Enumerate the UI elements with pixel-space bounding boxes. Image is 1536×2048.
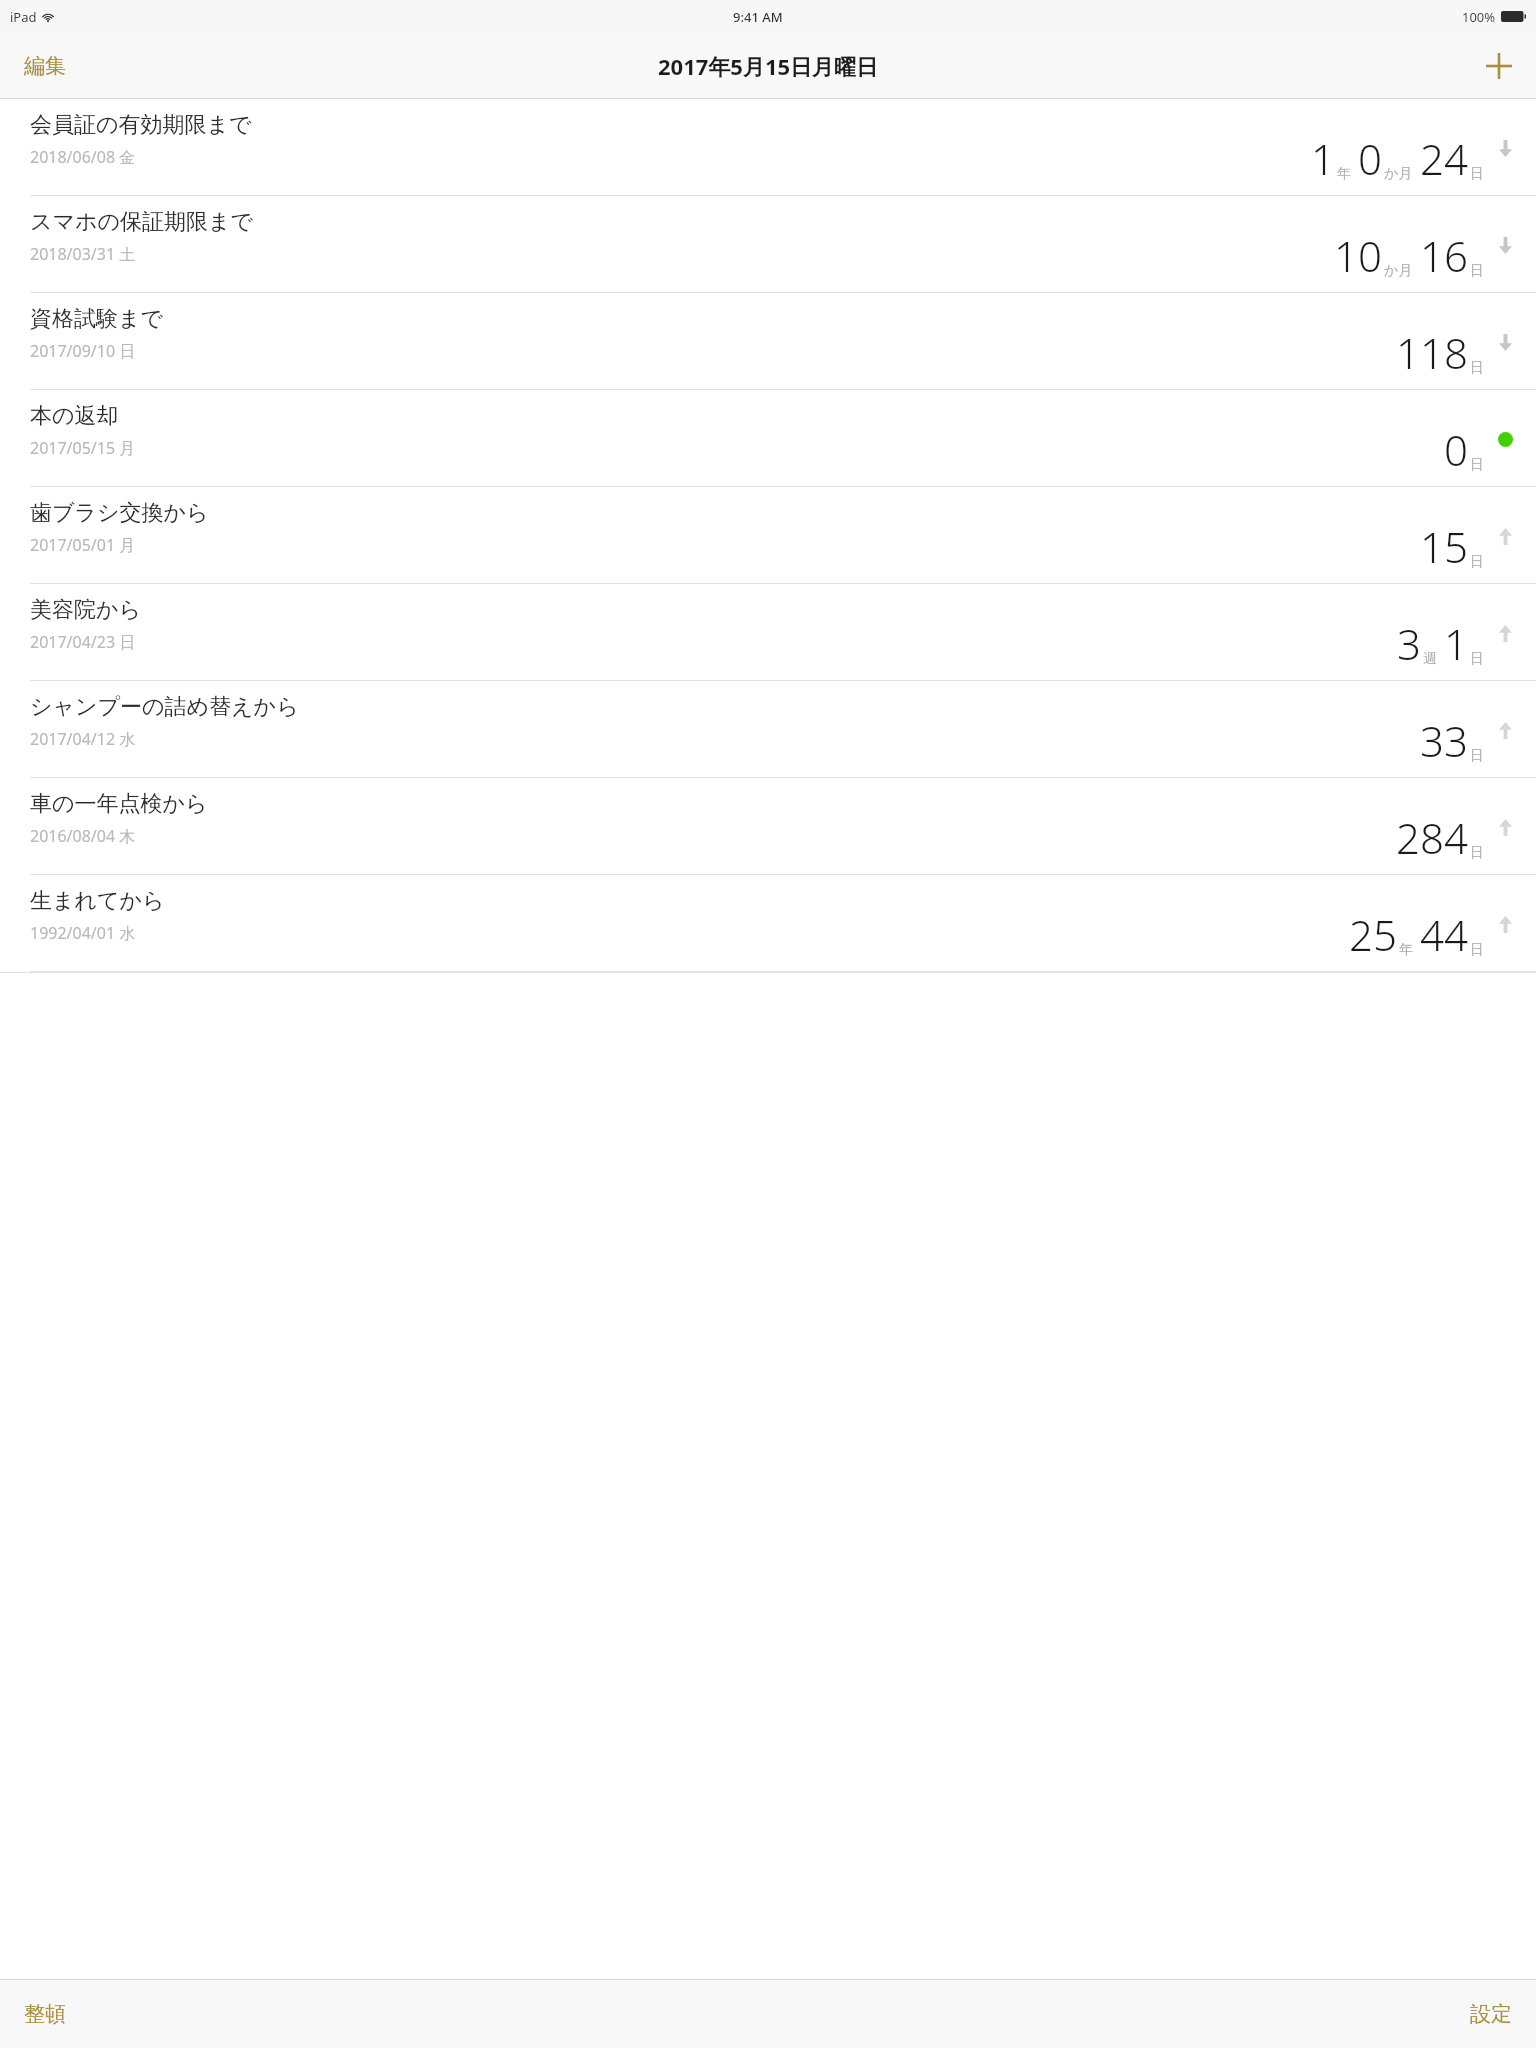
staticText: 日: [1470, 941, 1484, 959]
button[interactable]: 生まれてから: [0, 875, 1536, 972]
staticText: 25: [1349, 906, 1397, 963]
staticText: 0: [1358, 130, 1382, 187]
staticText: 設定: [1470, 2001, 1512, 2027]
staticText: か月: [1384, 165, 1413, 183]
staticText: 編集: [24, 53, 66, 79]
staticText: 284: [1396, 809, 1468, 866]
staticText: 日: [1470, 359, 1484, 377]
staticText: 2018/06/08 金: [30, 146, 136, 168]
button[interactable]: 車の一年点検から: [0, 778, 1536, 875]
staticText: 16: [1420, 227, 1468, 284]
staticText: スマホの保証期限まで: [30, 208, 254, 236]
staticText: 美容院から: [30, 596, 142, 624]
staticText: 日: [1470, 553, 1484, 571]
button[interactable]: シャンプーの詰め替えから: [0, 681, 1536, 778]
staticText: 会員証の有効期限まで: [30, 111, 252, 139]
staticText: 日: [1470, 650, 1484, 668]
staticText: 10: [1334, 227, 1382, 284]
staticText: 1: [1311, 130, 1335, 187]
staticText: 整頓: [24, 2001, 66, 2027]
staticText: 本の返却: [30, 402, 119, 430]
staticText: 2016/08/04 木: [30, 825, 136, 847]
button[interactable]: 美容院から: [0, 584, 1536, 681]
button[interactable]: 設定: [1458, 1993, 1524, 2035]
button[interactable]: Add: [1476, 43, 1522, 89]
button[interactable]: 整頓: [12, 1993, 78, 2035]
staticText: 2017/04/12 水: [30, 728, 136, 750]
staticText: 資格試験まで: [30, 305, 164, 333]
staticText: 日: [1470, 747, 1484, 765]
staticText: か月: [1384, 262, 1413, 280]
staticText: iPad: [10, 8, 37, 26]
staticText: 年: [1337, 165, 1351, 183]
staticText: 44: [1420, 906, 1468, 963]
staticText: 週: [1423, 650, 1437, 668]
staticText: 1992/04/01 水: [30, 922, 136, 944]
staticText: 100%: [1462, 8, 1496, 26]
staticText: 2018/03/31 土: [30, 243, 136, 265]
staticText: シャンプーの詰め替えから: [30, 693, 299, 721]
staticText: 生まれてから: [30, 887, 165, 915]
staticText: 3: [1397, 615, 1421, 672]
staticText: 118: [1396, 324, 1468, 381]
staticText: 2017/05/15 月: [30, 437, 136, 459]
staticText: 日: [1470, 456, 1484, 474]
staticText: 年: [1399, 941, 1413, 959]
staticText: 日: [1470, 262, 1484, 280]
button[interactable]: スマホの保証期限まで: [0, 196, 1536, 293]
staticText: 2017/04/23 日: [30, 631, 136, 653]
button[interactable]: 資格試験まで: [0, 293, 1536, 390]
button[interactable]: 本の返却: [0, 390, 1536, 487]
staticText: 15: [1420, 518, 1468, 575]
staticText: 日: [1470, 165, 1484, 183]
staticText: 0: [1444, 421, 1468, 478]
staticText: 9:41 AM: [733, 8, 783, 26]
staticText: 1: [1444, 615, 1468, 672]
staticText: 日: [1470, 844, 1484, 862]
staticText: 33: [1420, 712, 1468, 769]
staticText: 2017/05/01 月: [30, 534, 136, 556]
staticText: 2017年5月15日月曜日: [658, 51, 879, 81]
staticText: 2017/09/10 日: [30, 340, 136, 362]
button[interactable]: 編集: [12, 45, 78, 87]
button[interactable]: 会員証の有効期限まで: [0, 99, 1536, 196]
staticText: 歯ブラシ交換から: [30, 499, 209, 527]
staticText: 24: [1420, 130, 1468, 187]
button[interactable]: 歯ブラシ交換から: [0, 487, 1536, 584]
staticText: 車の一年点検から: [30, 790, 208, 818]
